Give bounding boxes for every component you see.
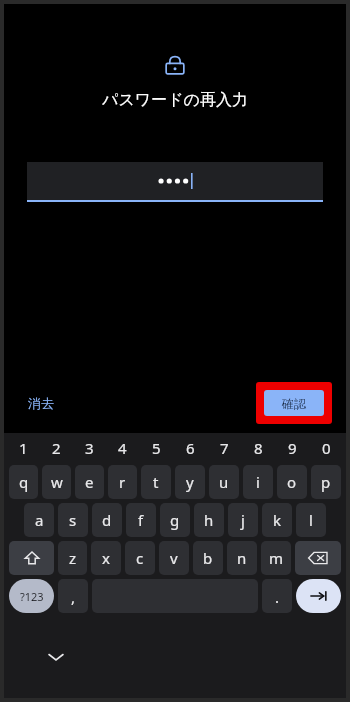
staticText: 確認 bbox=[282, 396, 306, 411]
button[interactable]: Enter bbox=[296, 579, 341, 613]
button[interactable]: w bbox=[42, 465, 71, 499]
staticText: p bbox=[321, 472, 331, 492]
staticText: b bbox=[203, 548, 213, 568]
button[interactable]: 2 bbox=[40, 433, 73, 463]
staticText: , bbox=[71, 587, 76, 607]
staticText: l bbox=[309, 510, 313, 530]
staticText: n bbox=[237, 548, 247, 568]
button[interactable]: g bbox=[160, 503, 190, 537]
button[interactable]: k bbox=[262, 503, 292, 537]
staticText: a bbox=[35, 510, 44, 530]
button[interactable]: . bbox=[262, 579, 292, 613]
button[interactable]: b bbox=[193, 541, 223, 575]
button[interactable]: v bbox=[159, 541, 189, 575]
staticText: パスワードの再入力 bbox=[102, 90, 248, 110]
button[interactable]: j bbox=[228, 503, 258, 537]
button[interactable]: z bbox=[58, 541, 87, 575]
button[interactable]: 3 bbox=[73, 433, 106, 463]
staticText: d bbox=[102, 510, 112, 530]
staticText: 6 bbox=[186, 438, 195, 458]
button[interactable]: r bbox=[108, 465, 137, 499]
staticText: . bbox=[275, 587, 280, 607]
staticText: r bbox=[119, 472, 126, 492]
staticText: k bbox=[273, 510, 282, 530]
button[interactable]: f bbox=[126, 503, 156, 537]
staticText: 3 bbox=[85, 438, 94, 458]
staticText: 7 bbox=[220, 438, 229, 458]
staticText: s bbox=[69, 510, 77, 530]
button[interactable]: h bbox=[194, 503, 224, 537]
button[interactable]: Shift bbox=[9, 541, 54, 575]
button[interactable]: t bbox=[141, 465, 171, 499]
button[interactable]: 8 bbox=[241, 433, 275, 463]
staticText: m bbox=[269, 548, 284, 568]
button[interactable]: 9 bbox=[275, 433, 309, 463]
staticText: 0 bbox=[322, 438, 331, 458]
staticText: 9 bbox=[288, 438, 297, 458]
button[interactable]: x bbox=[91, 541, 121, 575]
other: Backspace bbox=[308, 551, 328, 565]
staticText: e bbox=[85, 472, 94, 492]
staticText: 5 bbox=[152, 438, 161, 458]
staticText: y bbox=[186, 472, 194, 492]
staticText: ?123 bbox=[20, 589, 44, 604]
button[interactable]: o bbox=[277, 465, 307, 499]
staticText: o bbox=[287, 472, 297, 492]
button[interactable]: 消去 bbox=[20, 389, 62, 417]
button[interactable]: a bbox=[24, 503, 54, 537]
staticText: z bbox=[69, 548, 77, 568]
staticText: 4 bbox=[118, 438, 127, 458]
button[interactable]: c bbox=[125, 541, 155, 575]
button[interactable]: n bbox=[227, 541, 257, 575]
staticText: 2 bbox=[52, 438, 61, 458]
button[interactable]: 1 bbox=[7, 433, 40, 463]
button[interactable]: e bbox=[75, 465, 104, 499]
button[interactable]: 確認 bbox=[264, 390, 324, 416]
button[interactable] bbox=[27, 162, 323, 202]
staticText: 8 bbox=[254, 438, 263, 458]
staticText: u bbox=[219, 472, 229, 492]
button[interactable]: 5 bbox=[139, 433, 173, 463]
button[interactable]: 6 bbox=[173, 433, 207, 463]
staticText: f bbox=[138, 510, 144, 530]
other: Shift bbox=[24, 550, 40, 566]
button[interactable]: l bbox=[296, 503, 326, 537]
button[interactable]: q bbox=[9, 465, 38, 499]
staticText: 消去 bbox=[28, 395, 54, 411]
staticText: h bbox=[204, 510, 214, 530]
button[interactable]: Backspace bbox=[295, 541, 341, 575]
button[interactable]: d bbox=[92, 503, 122, 537]
staticText: q bbox=[19, 472, 29, 492]
staticText: 1 bbox=[19, 438, 28, 458]
staticText: g bbox=[170, 510, 180, 530]
staticText: j bbox=[241, 510, 245, 530]
button[interactable]: i bbox=[243, 465, 273, 499]
button[interactable]: ?123 bbox=[9, 579, 54, 613]
staticText: i bbox=[256, 472, 260, 492]
staticText: w bbox=[51, 472, 63, 492]
button[interactable]: 0 bbox=[309, 433, 343, 463]
button[interactable]: 4 bbox=[106, 433, 139, 463]
button[interactable]: 7 bbox=[207, 433, 241, 463]
staticText: t bbox=[153, 472, 159, 492]
button[interactable]: y bbox=[175, 465, 205, 499]
other: Locked bbox=[162, 52, 188, 78]
button[interactable]: s bbox=[58, 503, 88, 537]
staticText: v bbox=[170, 548, 178, 568]
staticText: x bbox=[102, 548, 110, 568]
button[interactable]: p bbox=[311, 465, 341, 499]
button[interactable]: , bbox=[58, 579, 88, 613]
staticText: c bbox=[136, 548, 144, 568]
button[interactable]: m bbox=[261, 541, 291, 575]
button[interactable]: u bbox=[209, 465, 239, 499]
